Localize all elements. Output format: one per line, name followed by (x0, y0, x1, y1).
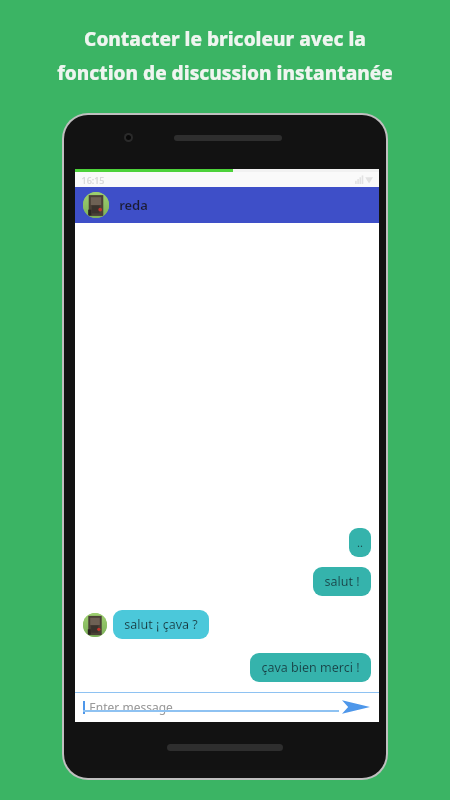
button[interactable]: reda (75, 187, 379, 223)
staticText: salut ! (324, 573, 360, 590)
staticText: 16:15 (81, 174, 105, 186)
staticText: Contacter le bricoleur avec la (84, 26, 366, 52)
button[interactable]: Enter message (83, 699, 339, 715)
button[interactable]: .. (349, 528, 371, 557)
staticText: .. (357, 535, 363, 550)
staticText: salut ¡ çava ? (124, 616, 198, 633)
button[interactable]: salut ! (313, 567, 371, 596)
button[interactable]: Send (339, 694, 373, 720)
staticText: çava bien merci ! (261, 659, 360, 676)
staticText: Enter message (89, 699, 173, 715)
button[interactable]: salut ¡ çava ? (113, 610, 209, 639)
button[interactable]: çava bien merci ! (250, 653, 371, 682)
staticText: reda (119, 196, 148, 214)
staticText: fonction de discussion instantanée (57, 60, 393, 86)
